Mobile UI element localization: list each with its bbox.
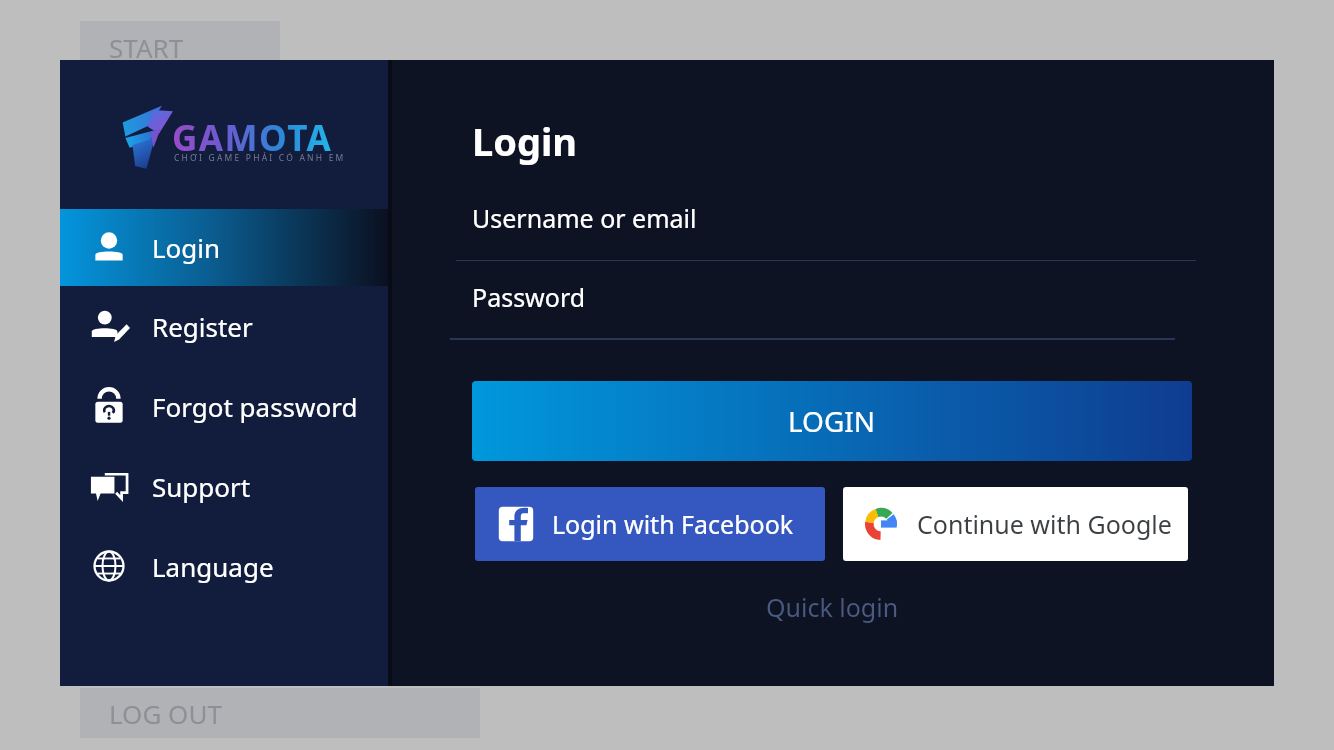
staticText: GAMOTA [172, 114, 333, 162]
button[interactable]: Register [60, 286, 388, 366]
button[interactable]: Forgot password [60, 366, 388, 446]
staticText: Register [152, 309, 253, 344]
staticText: Login [152, 230, 221, 265]
button[interactable]: START [80, 21, 280, 73]
button[interactable]: Support [60, 446, 388, 526]
button[interactable]: Login with Facebook [475, 487, 825, 561]
other: Forgot password [88, 385, 130, 427]
staticText: Username or email [472, 201, 697, 235]
staticText: Login with Facebook [552, 507, 794, 541]
staticText: Continue with Google [917, 507, 1172, 541]
button[interactable]: LOGIN [472, 381, 1192, 461]
staticText: Login [472, 115, 578, 167]
staticText: Quick login [766, 590, 899, 624]
staticText: LOG OUT [109, 696, 222, 731]
staticText: Password [472, 280, 586, 314]
other: Language [88, 545, 130, 587]
button[interactable]: Continue with Google [843, 487, 1188, 561]
staticText: GAM [174, 112, 255, 158]
other: Register [88, 305, 130, 347]
button[interactable]: Quick login [472, 587, 1192, 627]
button[interactable]: Password [392, 278, 1274, 340]
staticText: LOGIN [788, 402, 876, 440]
button[interactable]: Language [60, 526, 388, 606]
staticText: Language [152, 549, 274, 584]
other: Login [88, 227, 130, 269]
staticText: START [109, 30, 184, 65]
button[interactable]: LOG OUT [80, 688, 480, 738]
other: Support [88, 465, 130, 507]
button[interactable]: Username or email [392, 199, 1274, 261]
staticText: Forgot password [152, 389, 358, 424]
staticText: Support [152, 469, 251, 504]
button[interactable]: Login [60, 209, 388, 286]
staticText: CHƠI GAME PHẢI CÓ ANH EM [174, 152, 346, 164]
